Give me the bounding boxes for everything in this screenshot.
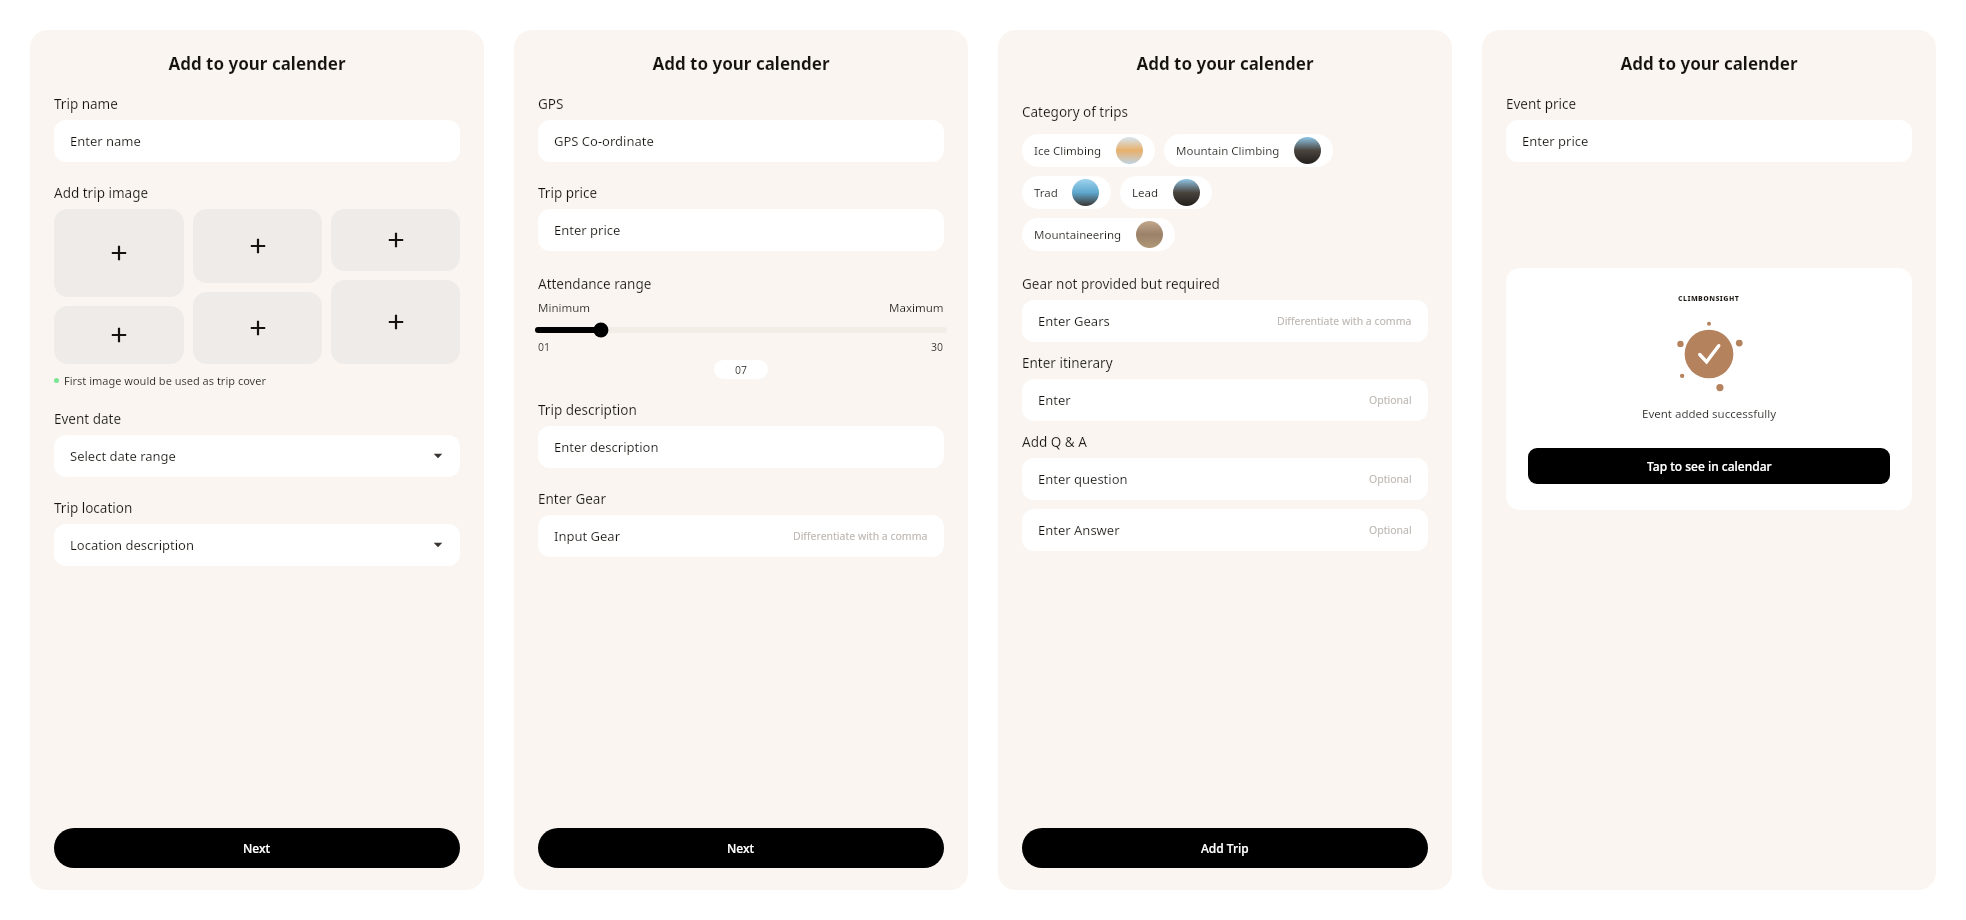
staticText: Enter itinerary	[1022, 354, 1113, 372]
staticText: Add Q & A	[1022, 433, 1087, 451]
staticText: Optional	[1369, 393, 1412, 407]
staticText: Maximum	[889, 300, 944, 316]
button[interactable]: Add image	[193, 292, 322, 364]
staticText: CLIMBONSIGHT	[1678, 294, 1740, 304]
staticText: Tap to see in calendar	[1647, 458, 1772, 474]
button[interactable]: Enter price	[538, 209, 944, 251]
button[interactable]: Enter name	[54, 120, 460, 162]
staticText: Next	[243, 840, 271, 856]
staticText: Ice Climbing	[1034, 143, 1102, 159]
staticText: Trip name	[54, 95, 118, 113]
staticText: Optional	[1369, 523, 1412, 537]
staticText: Add to your calender	[538, 52, 944, 75]
button[interactable]: Add Trip	[1022, 828, 1428, 868]
button[interactable]: Add image	[331, 280, 460, 364]
staticText: Category of trips	[1022, 103, 1129, 121]
button[interactable]: Next	[54, 828, 460, 868]
staticText: GPS	[538, 95, 564, 113]
staticText: 30	[931, 340, 944, 354]
button[interactable]: Enter Answer	[1022, 509, 1428, 551]
button[interactable]: Input Gear	[538, 515, 944, 557]
staticText: Add to your calender	[1506, 52, 1912, 75]
staticText: First image would be used as trip cover	[64, 373, 266, 388]
staticText: Enter price	[554, 221, 621, 239]
button[interactable]: Add image	[331, 209, 460, 271]
staticText: Enter description	[554, 438, 659, 456]
staticText: Differentiate with a comma	[1277, 314, 1412, 328]
staticText: Trad	[1034, 185, 1058, 201]
staticText: Enter price	[1522, 132, 1589, 150]
staticText: Event date	[54, 410, 122, 428]
staticText: Event price	[1506, 95, 1577, 113]
staticText: Attendance range	[538, 275, 652, 293]
staticText: Gear not provided but required	[1022, 275, 1220, 293]
button[interactable]: Enter question	[1022, 458, 1428, 500]
staticText: Enter Gears	[1038, 312, 1110, 330]
staticText: Lead	[1132, 185, 1159, 201]
staticText: Next	[727, 840, 755, 856]
button[interactable]: Enter description	[538, 426, 944, 468]
staticText: 07	[735, 363, 748, 377]
staticText: Differentiate with a comma	[793, 529, 928, 543]
button[interactable]: Select date range	[54, 435, 460, 477]
button[interactable]: Enter price	[1506, 120, 1912, 162]
staticText: Trip price	[538, 184, 598, 202]
staticText: Trip location	[54, 499, 133, 517]
staticText: Enter Gear	[538, 490, 607, 508]
staticText: 01	[538, 340, 551, 354]
button[interactable]: Location description	[54, 524, 460, 566]
staticText: Mountain Climbing	[1176, 143, 1280, 159]
button[interactable]: Ice Climbing	[1022, 134, 1155, 167]
button[interactable]: Enter Gears	[1022, 300, 1428, 342]
staticText: Location description	[70, 536, 194, 554]
staticText: Enter name	[70, 132, 141, 150]
button[interactable]: Add image	[54, 306, 184, 364]
staticText: Optional	[1369, 472, 1412, 486]
button[interactable]: Lead	[1120, 176, 1212, 209]
button[interactable]: Mountain Climbing	[1164, 134, 1333, 167]
staticText: Add trip image	[54, 184, 149, 202]
button[interactable]: Next	[538, 828, 944, 868]
staticText: GPS Co-ordinate	[554, 132, 654, 150]
staticText: Add to your calender	[54, 52, 460, 75]
staticText: Enter question	[1038, 470, 1128, 488]
button[interactable]: Mountaineering	[1022, 218, 1175, 251]
staticText: Input Gear	[554, 527, 621, 545]
button[interactable]: Add image	[54, 209, 184, 297]
button[interactable]: Tap to see in calendar	[1528, 448, 1890, 484]
button[interactable]: Trad	[1022, 176, 1111, 209]
staticText: Enter	[1038, 391, 1071, 409]
staticText: Trip description	[538, 401, 637, 419]
button[interactable]: GPS Co-ordinate	[538, 120, 944, 162]
staticText: Add Trip	[1201, 840, 1249, 856]
button[interactable]: Attendance slider	[538, 324, 944, 336]
staticText: Enter Answer	[1038, 521, 1120, 539]
staticText: Minimum	[538, 300, 591, 316]
button[interactable]: Add image	[193, 209, 322, 283]
staticText: Add to your calender	[1022, 52, 1428, 75]
staticText: Event added successfully	[1642, 406, 1777, 422]
staticText: Mountaineering	[1034, 227, 1122, 243]
button[interactable]: Enter	[1022, 379, 1428, 421]
staticText: Select date range	[70, 447, 176, 465]
